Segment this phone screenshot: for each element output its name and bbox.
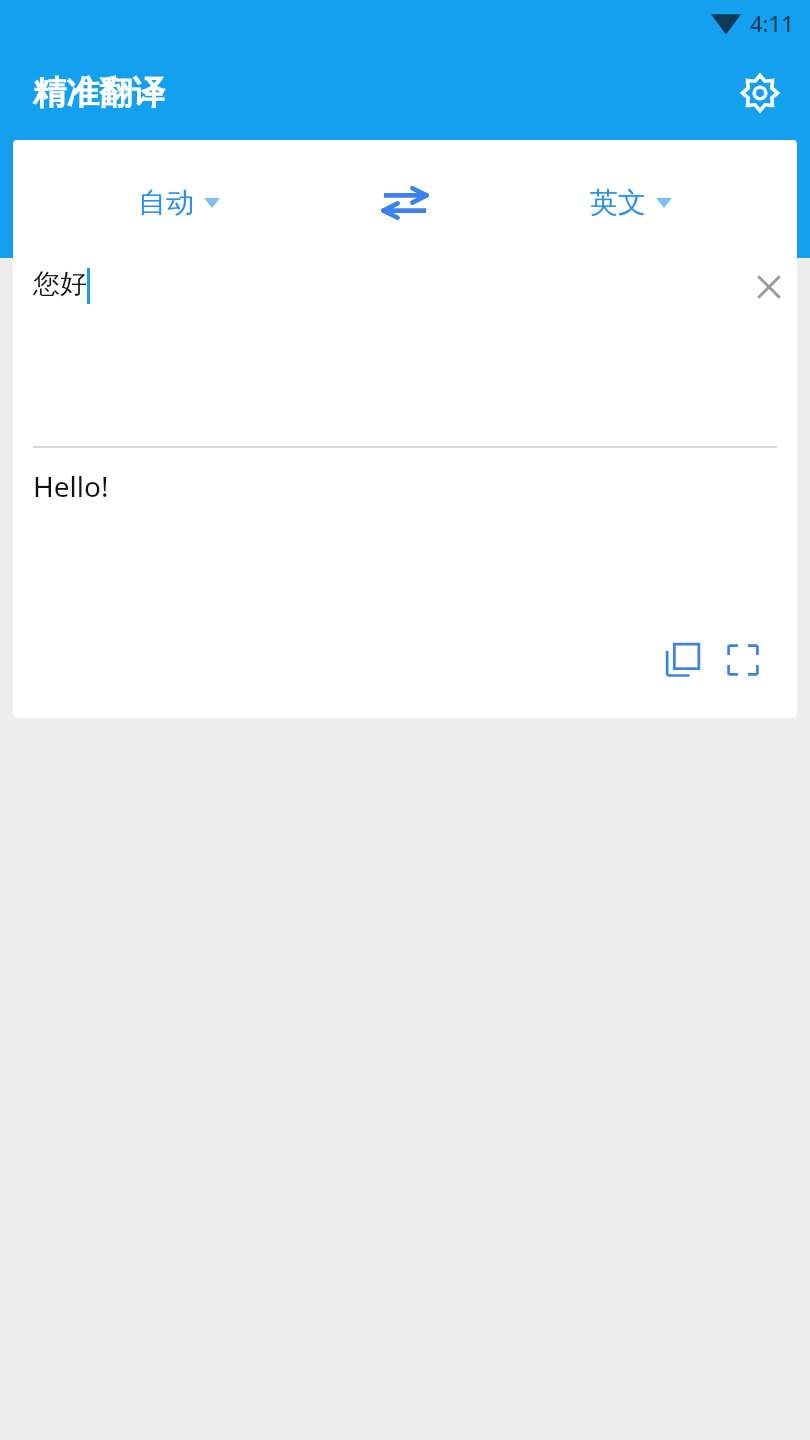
staticText: 精准翻译 xyxy=(33,72,165,114)
button[interactable]: Copy xyxy=(657,634,709,686)
staticText: 4:11 xyxy=(750,8,794,38)
button[interactable]: 英文 xyxy=(465,140,797,265)
button[interactable]: Settings xyxy=(732,65,788,121)
staticText: 自动 xyxy=(138,185,194,220)
button[interactable]: Clear text xyxy=(745,263,793,311)
button[interactable]: 自动 xyxy=(13,140,345,265)
staticText: 英文 xyxy=(590,185,646,220)
staticText: Hello! xyxy=(33,467,109,505)
staticText: 您好 xyxy=(33,267,87,301)
button[interactable]: Swap languages xyxy=(345,140,465,265)
button[interactable]: Fullscreen xyxy=(717,634,769,686)
